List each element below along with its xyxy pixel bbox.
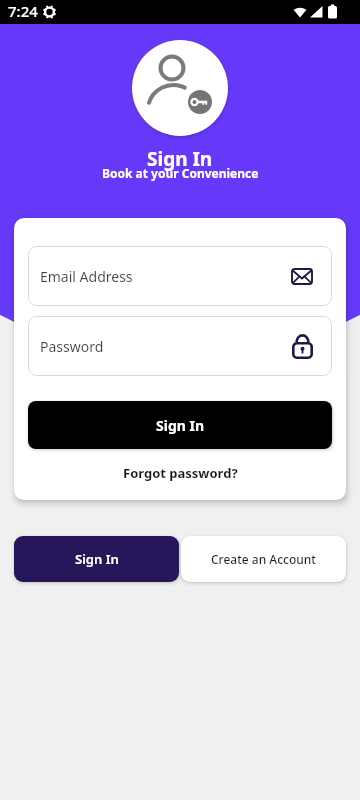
staticText: Email Address: [40, 267, 133, 286]
staticText: Password: [40, 337, 104, 356]
button[interactable]: Email Address: [28, 246, 332, 306]
staticText: Sign In: [156, 416, 205, 435]
button[interactable]: Create an Account: [181, 536, 346, 582]
staticText: Sign In: [75, 550, 119, 568]
button[interactable]: Password: [28, 316, 332, 376]
button[interactable]: Sign In: [14, 536, 179, 582]
staticText: Book at your Convenience: [102, 165, 259, 181]
staticText: 7:24: [8, 1, 38, 21]
staticText: Sign In: [147, 146, 213, 172]
button[interactable]: Sign In: [28, 401, 332, 449]
button[interactable]: Forgot password?: [123, 464, 238, 482]
staticText: Create an Account: [211, 551, 316, 567]
